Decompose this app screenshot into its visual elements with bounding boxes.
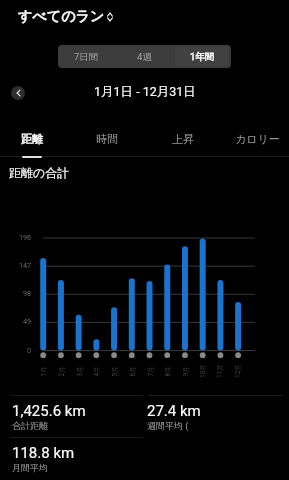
button[interactable]: すべてのラン — [14, 5, 118, 29]
button[interactable]: 4週 — [117, 47, 171, 66]
button[interactable]: 上昇 — [147, 119, 219, 157]
button[interactable]: 1年間 — [175, 47, 229, 66]
staticText: すべてのラン — [18, 8, 104, 26]
staticText: 5月 — [110, 365, 118, 376]
staticText: 1月 — [39, 365, 47, 376]
staticText: 7月 — [146, 365, 154, 376]
staticText: 98 — [6, 289, 31, 297]
staticText: 6月 — [128, 365, 136, 376]
button[interactable]: Previous period — [11, 86, 25, 100]
button[interactable]: カロリー — [221, 119, 289, 157]
staticText: 0 — [6, 346, 31, 354]
staticText: 1月1日 - 12月31日 — [94, 84, 196, 100]
staticText: 合計距離 — [12, 420, 48, 431]
button[interactable]: 時間 — [71, 119, 143, 157]
staticText: 10月 — [199, 364, 207, 378]
staticText: 12月 — [234, 364, 242, 378]
staticText: 月間平均 — [12, 462, 48, 473]
staticText: 4月 — [92, 365, 100, 376]
button[interactable]: 距離 — [0, 119, 68, 157]
staticText: 2月 — [57, 365, 65, 376]
staticText: 7日間 — [74, 51, 99, 63]
staticText: 3月 — [75, 365, 83, 376]
staticText: 4週 — [137, 51, 152, 63]
staticText: 196 — [6, 233, 31, 241]
staticText: 8月 — [163, 365, 171, 376]
staticText: カロリー — [235, 132, 280, 146]
staticText: 9月 — [181, 365, 189, 376]
staticText: 118.8 km — [12, 444, 75, 462]
button[interactable]: 7日間 — [60, 47, 113, 66]
staticText: 時間 — [96, 132, 118, 146]
staticText: 1年間 — [190, 51, 215, 63]
staticText: 27.4 km — [147, 402, 201, 420]
staticText: 距離の合計 — [9, 165, 70, 180]
staticText: 距離 — [21, 132, 43, 146]
staticText: 147 — [6, 261, 31, 269]
staticText: 週間平均 ( — [147, 420, 189, 431]
staticText: 1,425.6 km — [12, 402, 86, 420]
staticText: 49 — [6, 317, 31, 325]
staticText: 上昇 — [172, 132, 194, 146]
staticText: 11月 — [216, 364, 224, 378]
